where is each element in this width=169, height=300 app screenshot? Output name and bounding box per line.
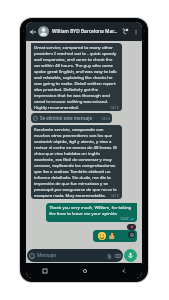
button[interactable]: Heart reaction: [127, 224, 136, 230]
button[interactable]: Back: [28, 27, 38, 37]
button[interactable]: Back: [119, 266, 128, 275]
staticText: Excelente servicio, comparado con muchos…: [34, 126, 119, 198]
staticText: 14:13: [110, 193, 119, 198]
button[interactable]: Great service, compared to many other pr…: [31, 43, 122, 111]
button[interactable]: Mensaje: [27, 249, 123, 262]
staticText: 14:47: [120, 216, 129, 221]
staticText: Great service, compared to many other pr…: [34, 44, 119, 110]
button[interactable]: Se eliminó este mensaje: [31, 113, 112, 123]
staticText: 14:12: [110, 105, 119, 110]
button[interactable]: Video call: [121, 27, 130, 36]
button[interactable]: Recent apps: [40, 266, 49, 275]
button[interactable]: More reactions: [128, 231, 135, 238]
button[interactable]: [93, 230, 137, 242]
staticText: 14:14: [101, 116, 110, 121]
button[interactable]: Thank you very much, William, for taking…: [46, 203, 137, 222]
button[interactable]: Home: [80, 266, 89, 275]
button[interactable]: Camera: [115, 253, 121, 259]
button[interactable]: Attach file: [106, 253, 112, 259]
staticText: William BYD Barcelona Mar...: [52, 28, 121, 35]
button[interactable]: More options: [132, 28, 139, 35]
staticText: Mensaje: [37, 252, 106, 259]
button[interactable]: Excelente servicio, comparado con muchos…: [31, 125, 122, 199]
staticText: Se eliminó este mensaje: [40, 115, 93, 121]
button[interactable]: Voice message: [124, 249, 137, 262]
staticText: Thank you very much, William, for taking…: [49, 204, 134, 216]
